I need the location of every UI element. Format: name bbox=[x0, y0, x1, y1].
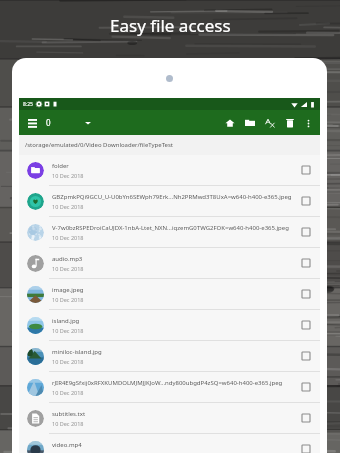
staticText: miniloc-island.jpg bbox=[52, 348, 102, 356]
button[interactable]: V-7w0bzRSPEDroiCaUJDX-1nbA-Ltet_NXN...iq… bbox=[19, 217, 320, 248]
button[interactable]: video.mp4 bbox=[19, 434, 320, 453]
button[interactable]: Select audio.mp3 bbox=[298, 255, 314, 271]
button[interactable]: New folder bbox=[242, 115, 257, 130]
button[interactable]: audio.mp3 bbox=[19, 248, 320, 279]
button[interactable]: More options bbox=[301, 116, 315, 130]
staticText: V-7w0bzRSPEDroiCaUJDX-1nbA-Ltet_NXN...iq… bbox=[52, 224, 289, 232]
button[interactable]: Rename bbox=[262, 115, 277, 130]
staticText: 10 Dec 2018 bbox=[52, 358, 84, 365]
staticText: 10 Dec 2018 bbox=[52, 234, 84, 241]
staticText: 10 Dec 2018 bbox=[52, 389, 84, 396]
staticText: GBZpmkPQi9GCU_U-U0bYn6SEWph79Erk...Nh2PR… bbox=[52, 193, 292, 201]
button[interactable]: Sort dropdown bbox=[81, 116, 95, 130]
button[interactable]: Delete bbox=[282, 115, 297, 130]
button[interactable]: Select miniloc-island.jpg bbox=[298, 348, 314, 364]
button[interactable]: Menu bbox=[24, 115, 40, 131]
button[interactable]: GBZpmkPQi9GCU_U-U0bYn6SEWph79Erk...Nh2PR… bbox=[19, 186, 320, 217]
button[interactable]: Select GBZpmkPQi9GCU_U-U0bYn6SEWph79Erk.… bbox=[298, 193, 314, 209]
button[interactable]: Select video.mp4 bbox=[298, 441, 314, 453]
staticText: subtitles.txt bbox=[52, 410, 86, 418]
staticText: 10 Dec 2018 bbox=[52, 265, 84, 272]
button[interactable]: rJIR4E9gSfxij0xRFXKUMDOLMJMJJKJoW...ndy8… bbox=[19, 372, 320, 403]
staticText: 10 Dec 2018 bbox=[52, 327, 84, 334]
button[interactable]: subtitles.txt bbox=[19, 403, 320, 434]
button[interactable]: Select rJIR4E9gSfxij0xRFXKUMDOLMJMJJKJoW… bbox=[298, 379, 314, 395]
button[interactable]: miniloc-island.jpg bbox=[19, 341, 320, 372]
staticText: image.jpeg bbox=[52, 286, 84, 294]
button[interactable]: Select V-7w0bzRSPEDroiCaUJDX-1nbA-Ltet_N… bbox=[298, 224, 314, 240]
staticText: 10 Dec 2018 bbox=[52, 420, 84, 427]
button[interactable]: Home bbox=[222, 115, 237, 130]
staticText: /storage/emulated/0/Video Downloader/fil… bbox=[25, 141, 173, 149]
staticText: 0 bbox=[46, 117, 51, 128]
button[interactable]: Select subtitles.txt bbox=[298, 410, 314, 426]
staticText: folder bbox=[52, 162, 69, 170]
staticText: 8:25 bbox=[23, 101, 33, 108]
staticText: audio.mp3 bbox=[52, 255, 83, 263]
staticText: 10 Dec 2018 bbox=[52, 172, 84, 179]
button[interactable]: island.jpg bbox=[19, 310, 320, 341]
staticText: rJIR4E9gSfxij0xRFXKUMDOLMJMJJKJoW...ndy8… bbox=[52, 379, 283, 387]
staticText: video.mp4 bbox=[52, 441, 82, 449]
button[interactable]: folder bbox=[19, 155, 320, 186]
button[interactable]: Select folder bbox=[298, 162, 314, 178]
staticText: island.jpg bbox=[52, 317, 80, 325]
button[interactable]: image.jpeg bbox=[19, 279, 320, 310]
staticText: 10 Dec 2018 bbox=[52, 296, 84, 303]
button[interactable]: Select image.jpeg bbox=[298, 286, 314, 302]
staticText: 10 Dec 2018 bbox=[52, 203, 84, 210]
button[interactable]: Select island.jpg bbox=[298, 317, 314, 333]
staticText: Easy file access bbox=[110, 14, 231, 37]
